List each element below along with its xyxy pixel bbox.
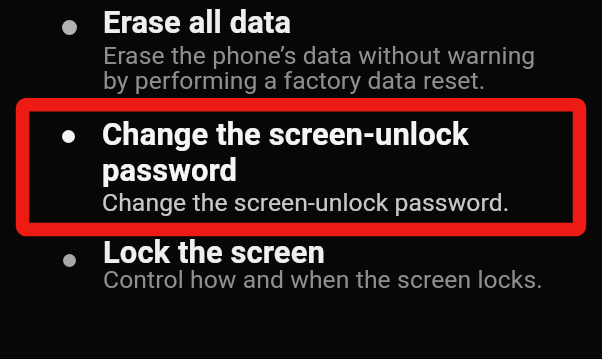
staticText: Change the screen-unlock bbox=[102, 116, 469, 152]
staticText: Erase the phone’s data without warning bbox=[103, 41, 536, 70]
staticText: password bbox=[102, 152, 238, 188]
staticText: by performing a factory data reset. bbox=[103, 66, 486, 95]
staticText: Control how and when the screen locks. bbox=[103, 265, 543, 294]
staticText: Lock the screen bbox=[103, 234, 325, 270]
button[interactable] bbox=[0, 237, 602, 307]
staticText: Erase all data bbox=[103, 4, 292, 40]
button[interactable] bbox=[0, 97, 602, 237]
button[interactable] bbox=[0, 0, 602, 97]
staticText: Change the screen-unlock password. bbox=[102, 188, 510, 217]
